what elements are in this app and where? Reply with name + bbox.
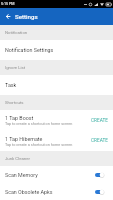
- staticText: 1 Tap Hibernate: [5, 136, 43, 142]
- staticText: Scan Obsolete Apks: [5, 189, 94, 195]
- button[interactable]: Toggle Scan Obsolete Apks: [94, 186, 105, 197]
- staticText: Shortcuts: [5, 100, 24, 105]
- staticText: 5:15 PM: [1, 2, 15, 6]
- button[interactable]: Scan Memory: [0, 166, 113, 183]
- staticText: Ignore List: [5, 65, 26, 70]
- button[interactable]: Back: [0, 8, 15, 25]
- staticText: Tap to create a shortcut on home screen: [5, 143, 73, 147]
- staticText: Scan Memory: [5, 172, 94, 178]
- button[interactable]: Toggle Scan Memory: [94, 169, 105, 180]
- staticText: Tap to create a shortcut on home screen: [5, 122, 73, 126]
- button[interactable]: Notification Settings: [0, 40, 113, 60]
- staticText: Settings: [15, 13, 38, 20]
- staticText: Task: [5, 82, 17, 88]
- staticText: CREATE: [91, 118, 108, 124]
- button[interactable]: 1 Tap Hibernate: [0, 131, 113, 151]
- staticText: Junk Cleaner: [5, 156, 30, 161]
- staticText: CREATE: [91, 138, 108, 144]
- staticText: 1 Tap Boost: [5, 115, 34, 121]
- button[interactable]: Scan Obsolete Apks: [0, 183, 113, 200]
- button[interactable]: CREATE: [89, 116, 110, 126]
- button[interactable]: CREATE: [89, 136, 110, 146]
- button[interactable]: 1 Tap Boost: [0, 110, 113, 131]
- button[interactable]: Task: [0, 75, 113, 95]
- staticText: Notification Settings: [5, 47, 54, 53]
- staticText: Notification: [5, 30, 28, 35]
